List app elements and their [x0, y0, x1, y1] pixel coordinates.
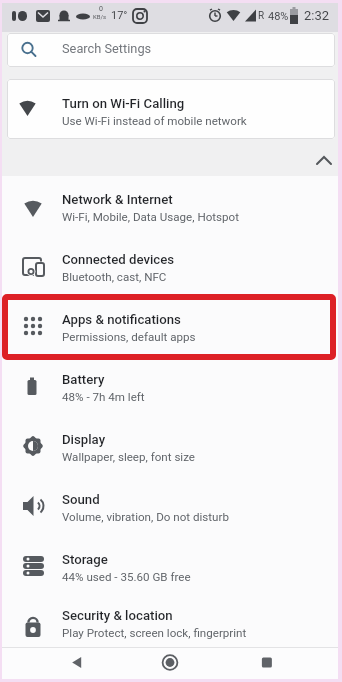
staticText: Bluetooth, cast, NFC	[62, 270, 167, 284]
staticText: Wallpaper, sleep, font size	[62, 450, 195, 464]
staticText: Network & Internet	[62, 192, 173, 207]
staticText: Security & location	[62, 608, 173, 623]
staticText: Storage	[62, 552, 108, 567]
staticText: 44% used - 35.60 GB free	[62, 570, 191, 584]
button[interactable]	[226, 648, 338, 679]
staticText: Display	[62, 432, 106, 447]
button[interactable]: Network & Internet	[2, 176, 338, 236]
button[interactable]: Storage	[2, 536, 338, 596]
staticText: KB/s	[93, 13, 107, 20]
staticText: 2:32	[304, 8, 330, 23]
staticText: Search Settings	[62, 41, 152, 56]
staticText: Connected devices	[62, 252, 175, 267]
staticText: Volume, vibration, Do not disturb	[62, 510, 229, 524]
staticText: Wi-Fi, Mobile, Data Usage, Hotspot	[62, 210, 239, 224]
staticText: Apps & notifications	[62, 312, 181, 327]
button[interactable]: Search Settings	[7, 33, 335, 67]
staticText: 0	[99, 5, 103, 13]
button[interactable]	[114, 648, 226, 679]
staticText: Turn on Wi-Fi Calling	[62, 96, 185, 111]
button[interactable]: Display	[2, 416, 338, 476]
button[interactable]: Sound	[2, 476, 338, 536]
staticText: R	[258, 10, 265, 22]
button[interactable]: Apps & notifications	[2, 296, 338, 356]
staticText: Sound	[62, 492, 100, 507]
button[interactable]	[306, 148, 340, 176]
staticText: Battery	[62, 372, 105, 387]
button[interactable]: Battery	[2, 356, 338, 416]
button[interactable]	[2, 648, 114, 679]
button[interactable]: Connected devices	[2, 236, 338, 296]
staticText: 17°	[111, 9, 128, 22]
staticText: Permissions, default apps	[62, 330, 196, 344]
staticText: Use Wi-Fi instead of mobile network	[62, 114, 247, 128]
button[interactable]: Turn on Wi-Fi Calling	[7, 79, 335, 139]
staticText: Play Protect, screen lock, fingerprint	[62, 626, 247, 640]
staticText: 48%	[268, 10, 289, 23]
button[interactable]: Security & location	[2, 596, 338, 647]
staticText: 48% - 7h 4m left	[62, 390, 145, 404]
